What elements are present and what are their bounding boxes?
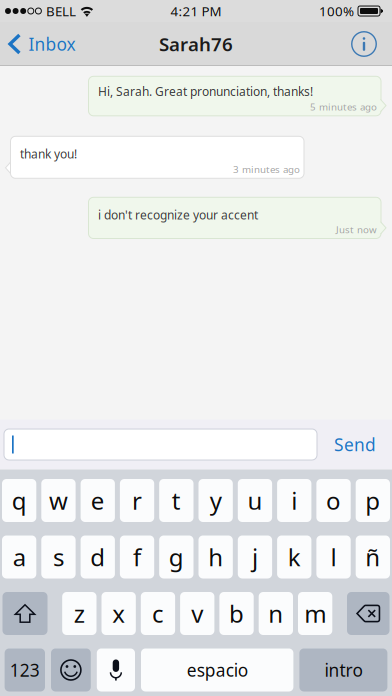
staticText: i [291,485,297,516]
staticText: z [74,598,85,629]
staticText: Hi, Sarah. Great pronunciation, thanks! [98,83,313,99]
staticText: intro [324,658,362,681]
staticText: thank you! [20,146,77,162]
staticText: Just now [336,223,377,236]
button[interactable]: m [298,592,332,635]
staticText: v [191,598,203,629]
button[interactable]: j [238,535,272,578]
staticText: e [91,485,105,516]
staticText: 5 minutes ago [310,100,377,113]
button[interactable]: t [159,479,193,522]
button[interactable]: x [101,592,136,635]
button[interactable]: q [2,479,36,522]
staticText: r [132,485,142,516]
staticText: 3 minutes ago [233,162,300,176]
staticText: j [252,541,258,573]
staticText: a [13,541,26,573]
button[interactable]: o [316,479,351,522]
staticText: y [210,485,222,516]
staticText: t [172,485,181,516]
staticText: ñ [365,541,380,573]
button[interactable]: e [81,479,115,522]
staticText: s [53,541,64,573]
staticText: h [208,541,223,573]
button[interactable]: a [2,535,36,578]
staticText: k [288,541,301,573]
staticText: i don't recognize your accent [98,207,258,223]
staticText: n [268,598,283,629]
staticText: c [152,598,164,629]
staticText: 123 [10,658,40,681]
button[interactable]: z [62,592,96,635]
button[interactable]: p [356,479,390,522]
button[interactable]: w [41,479,76,522]
button[interactable]: 123 [5,648,45,691]
staticText: l [330,541,336,573]
staticText: b [229,598,244,629]
staticText: espacio [187,658,248,681]
staticText: f [133,541,141,573]
button[interactable]: i [277,479,311,522]
button[interactable]: s [41,535,76,578]
button[interactable]: c [141,592,175,635]
staticText: m [304,598,326,629]
button[interactable]: intro [299,648,387,691]
button[interactable]: Inbox [0,22,87,66]
button[interactable]: h [198,535,233,578]
button[interactable]: k [277,535,311,578]
button[interactable]: b [219,592,254,635]
button[interactable]: Dictate [97,648,135,691]
button[interactable]: d [81,535,115,578]
button[interactable]: Shift [2,592,47,635]
button[interactable]: n [259,592,293,635]
staticText: BELL [46,2,76,20]
staticText: x [112,598,125,629]
button[interactable]: Details [339,22,392,66]
staticText: 100% [319,2,354,20]
button[interactable]: ñ [356,535,390,578]
staticText: g [169,541,184,573]
staticText: u [247,485,262,516]
button[interactable]: Send [325,424,385,464]
staticText: q [12,485,27,516]
staticText: Send [334,433,376,456]
staticText: d [90,541,105,573]
button[interactable]: u [238,479,272,522]
button[interactable]: y [198,479,233,522]
button[interactable]: g [159,535,193,578]
staticText: p [365,485,380,516]
staticText: Sarah76 [159,32,233,56]
staticText: w [49,485,68,516]
button[interactable]: espacio [141,648,293,691]
button[interactable]: Delete [347,592,389,635]
staticText: o [326,485,341,516]
button[interactable]: l [316,535,351,578]
button[interactable]: Emoji [51,648,91,691]
staticText: 4:21 PM [170,2,221,20]
button[interactable]: f [120,535,154,578]
staticText: Inbox [28,32,75,55]
button[interactable]: v [180,592,214,635]
button[interactable]: r [120,479,154,522]
